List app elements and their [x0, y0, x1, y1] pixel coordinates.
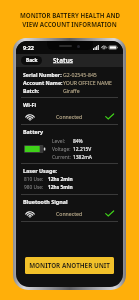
other: Bluetooth signal: [25, 209, 35, 219]
staticText: 12hs 2min: [48, 176, 73, 183]
staticText: Status: [53, 56, 74, 65]
staticText: MONITOR BATTERY HEALTH AND: [20, 11, 120, 19]
staticText: Back: [26, 57, 38, 64]
staticText: YOUR OFFICE NAME: [63, 79, 112, 86]
staticText: Batch:: [23, 87, 40, 94]
staticText: Bluetooth Signal: [23, 198, 68, 205]
staticText: 84%: [73, 138, 83, 145]
staticText: 12hs 5min: [48, 184, 73, 191]
staticText: 9:22: [23, 44, 34, 51]
staticText: Connected: [56, 210, 83, 217]
staticText: G2-02545-845: [63, 71, 97, 78]
staticText: Account Name:: [23, 79, 63, 86]
staticText: Giraffe: [63, 87, 80, 94]
other: Wi-Fi: [25, 112, 35, 122]
staticText: Laser Usage:: [23, 167, 58, 174]
staticText: Serial Number:: [23, 71, 62, 78]
button[interactable]: Back: [21, 56, 42, 65]
staticText: 980 Use:: [24, 184, 44, 191]
staticText: MONITOR ANOTHER UNIT: [29, 261, 110, 270]
staticText: Voltage:: [52, 146, 71, 153]
staticText: Connected: [56, 113, 83, 120]
staticText: Battery: [23, 128, 44, 135]
staticText: VIEW ACCOUNT INFORMATION: [22, 20, 117, 28]
staticText: Level:: [52, 138, 66, 145]
staticText: 1382mA: [73, 154, 92, 161]
button[interactable]: MONITOR ANOTHER UNIT: [25, 257, 114, 274]
staticText: Current:: [52, 154, 71, 161]
other: Battery level 84 percent: [24, 145, 46, 153]
staticText: Wi-Fi: [23, 101, 37, 108]
button[interactable]: Status: [53, 56, 74, 65]
staticText: 810 Use:: [24, 176, 44, 183]
staticText: 12.215V: [73, 146, 92, 153]
